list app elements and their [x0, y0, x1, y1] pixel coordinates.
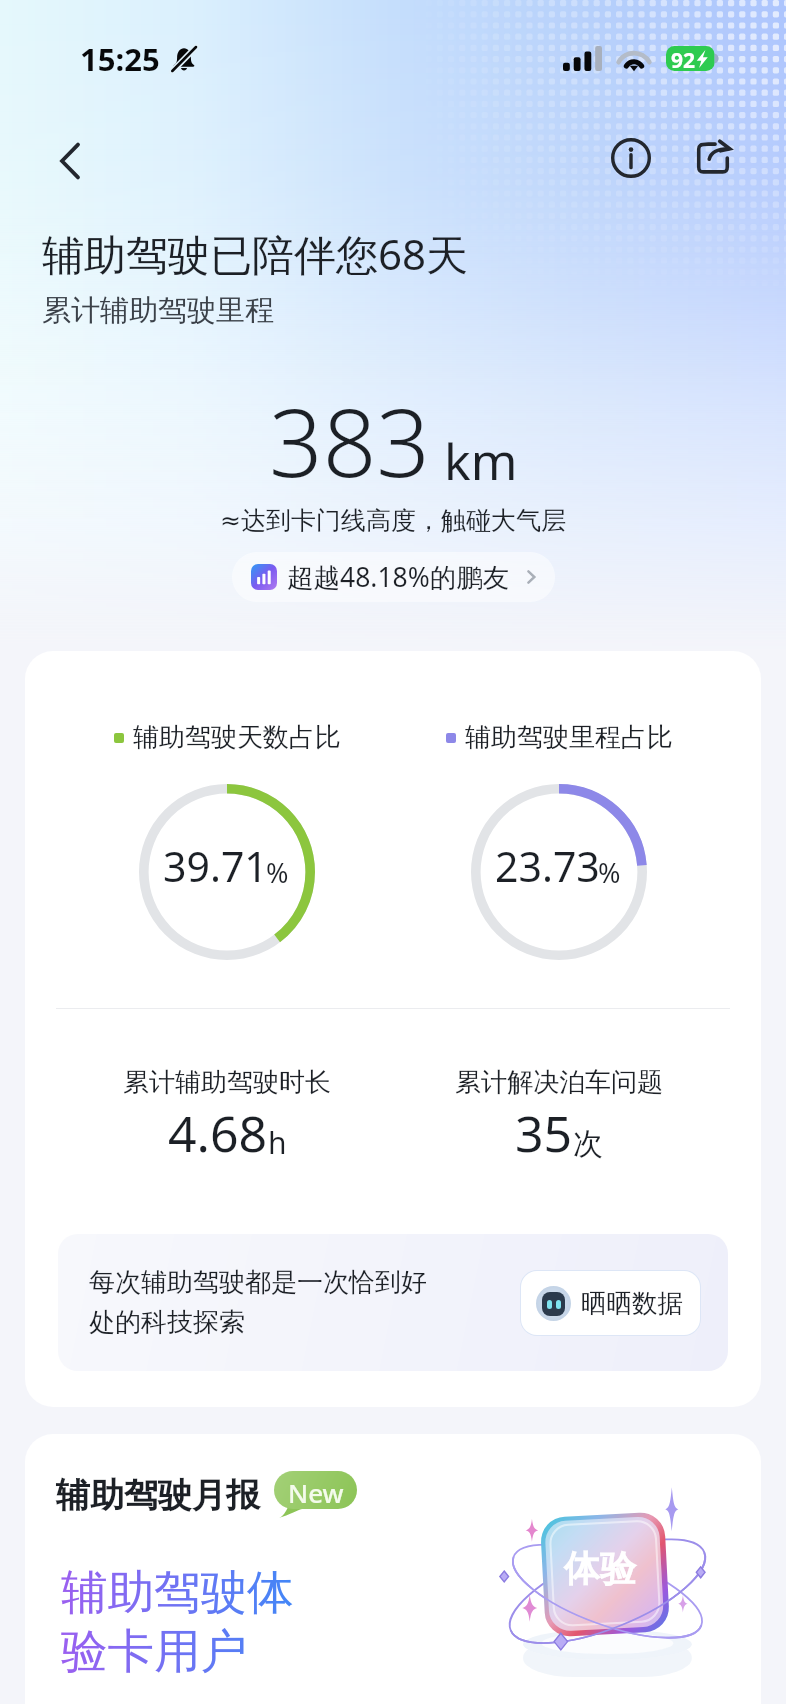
staticText: 累计辅助驾驶时长 — [123, 1066, 331, 1099]
staticText: 383 — [269, 377, 431, 505]
staticText: 辅助驾驶月报 — [56, 1474, 260, 1517]
staticText: 4.68 — [168, 1099, 268, 1167]
button[interactable]: Share — [685, 130, 741, 186]
staticText: 23.73 — [495, 838, 600, 894]
staticText: h — [268, 1122, 287, 1163]
staticText: 晒晒数据 — [581, 1287, 683, 1319]
button[interactable]: Back — [42, 133, 98, 189]
staticText: % — [598, 854, 621, 891]
staticText: 累计解决泊车问题 — [455, 1066, 663, 1099]
staticText: ≈达到卡门线高度，触碰大气层 — [0, 505, 786, 536]
staticText: 每次辅助驾驶都是一次恰到好 处的科技探索 — [89, 1266, 520, 1339]
staticText: 次 — [573, 1125, 603, 1163]
staticText: 35 — [515, 1099, 573, 1167]
staticText: 39.71 — [163, 838, 268, 894]
staticText: 92 — [671, 46, 696, 71]
staticText: 累计辅助驾驶里程 — [42, 292, 274, 329]
staticText: 辅助驾驶已陪伴您68天 — [42, 225, 469, 282]
staticText: 体验 — [564, 1546, 636, 1591]
staticText: New — [288, 1475, 344, 1510]
staticText: 15:25 — [80, 38, 160, 80]
staticText: 辅助驾驶天数占比 — [133, 721, 341, 754]
staticText: 辅助驾驶体 验卡用户 — [61, 1563, 294, 1680]
button[interactable]: 体验 — [25, 1434, 761, 1704]
button[interactable]: 超越48.18%的鹏友 — [232, 552, 555, 602]
staticText: km — [444, 427, 518, 495]
staticText: % — [266, 854, 289, 891]
staticText: 超越48.18%的鹏友 — [287, 559, 510, 595]
button[interactable]: 晒晒数据 — [521, 1271, 700, 1335]
staticText: 辅助驾驶里程占比 — [465, 721, 673, 754]
button[interactable]: Info — [603, 130, 659, 186]
